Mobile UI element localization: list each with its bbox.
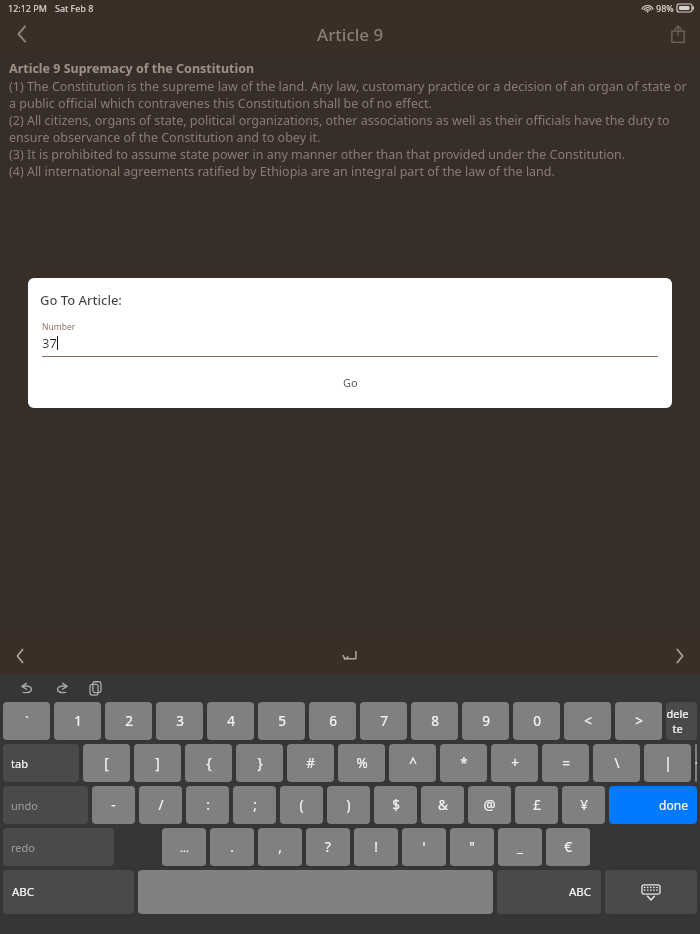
staticText: $: [392, 796, 400, 814]
staticText: (1) The Constitution is the supreme law …: [9, 78, 691, 180]
button[interactable]: 5: [258, 702, 305, 740]
button[interactable]: ,: [258, 828, 302, 866]
button[interactable]: \: [593, 744, 640, 782]
staticText: /: [158, 796, 164, 814]
button[interactable]: 8: [411, 702, 458, 740]
staticText: (: [299, 796, 304, 814]
button[interactable]: 1: [54, 702, 101, 740]
button[interactable]: Share: [656, 16, 700, 52]
button[interactable]: ?: [306, 828, 350, 866]
button[interactable]: Redo: [46, 675, 76, 701]
button[interactable]: {: [185, 744, 232, 782]
button[interactable]: &: [421, 786, 464, 824]
button[interactable]: ABC: [497, 870, 601, 914]
button[interactable]: ~: [695, 744, 697, 782]
button[interactable]: Paste: [80, 675, 110, 701]
button[interactable]: ;: [233, 786, 276, 824]
staticText: ABC: [569, 884, 592, 900]
button[interactable]: ABC: [3, 870, 134, 914]
button[interactable]: Back: [0, 16, 44, 52]
button[interactable]: +: [491, 744, 538, 782]
button[interactable]: 2: [105, 702, 152, 740]
button[interactable]: ]: [134, 744, 181, 782]
staticText: Number: [42, 321, 76, 333]
staticText: .: [230, 838, 234, 856]
staticText: [: [104, 754, 109, 772]
button[interactable]: >: [615, 702, 662, 740]
button[interactable]: .: [210, 828, 254, 866]
button[interactable]: tab: [3, 744, 79, 782]
button[interactable]: Previous: [0, 638, 40, 674]
staticText: Sat Feb 8: [55, 2, 94, 14]
button[interactable]: Hide keyboard: [330, 638, 370, 674]
staticText: ~: [695, 754, 697, 772]
staticText: redo: [11, 840, 35, 855]
staticText: ,: [278, 838, 282, 856]
staticText: undo: [11, 798, 39, 813]
button[interactable]: 3: [156, 702, 203, 740]
button[interactable]: redo: [3, 828, 114, 866]
button[interactable]: $: [374, 786, 417, 824]
button[interactable]: !: [354, 828, 398, 866]
button[interactable]: |: [644, 744, 691, 782]
staticText: ¥: [580, 796, 588, 814]
button[interactable]: delete: [666, 702, 697, 740]
button[interactable]: ): [327, 786, 370, 824]
button[interactable]: }: [236, 744, 283, 782]
staticText: >: [635, 712, 643, 730]
button[interactable]: Dismiss keyboard: [605, 870, 697, 914]
staticText: 8: [431, 712, 439, 730]
staticText: ]: [155, 754, 160, 772]
staticText: Article 9 Supremacy of the Constitution: [9, 60, 255, 77]
button[interactable]: €: [546, 828, 590, 866]
staticText: <: [584, 712, 592, 730]
button[interactable]: #: [287, 744, 334, 782]
button[interactable]: Go: [28, 357, 672, 408]
button[interactable]: ...: [162, 828, 206, 866]
button[interactable]: (: [280, 786, 323, 824]
staticText: @: [483, 796, 496, 814]
staticText: delete: [666, 706, 689, 736]
staticText: 0: [533, 712, 541, 730]
button[interactable]: `: [3, 702, 50, 740]
button[interactable]: -: [92, 786, 135, 824]
button[interactable]: 7: [360, 702, 407, 740]
staticText: 7: [380, 712, 388, 730]
button[interactable]: =: [542, 744, 589, 782]
staticText: £: [533, 796, 541, 814]
button[interactable]: undo: [3, 786, 88, 824]
button[interactable]: 9: [462, 702, 509, 740]
button[interactable]: ¥: [562, 786, 605, 824]
staticText: =: [562, 754, 570, 772]
button[interactable]: ^: [389, 744, 436, 782]
button[interactable]: [: [83, 744, 130, 782]
staticText: ABC: [12, 884, 35, 900]
button[interactable]: 0: [513, 702, 560, 740]
staticText: #: [306, 754, 315, 772]
staticText: Article 9: [317, 23, 384, 46]
button[interactable]: 4: [207, 702, 254, 740]
button[interactable]: done: [609, 786, 697, 824]
button[interactable]: Next: [660, 638, 700, 674]
staticText: ): [346, 796, 351, 814]
button[interactable]: _: [498, 828, 542, 866]
button[interactable]: Undo: [12, 675, 42, 701]
button[interactable]: ": [450, 828, 494, 866]
staticText: 9: [482, 712, 490, 730]
staticText: ': [422, 838, 426, 856]
staticText: 1: [74, 712, 82, 730]
staticText: Go: [343, 375, 358, 390]
button[interactable]: ': [402, 828, 446, 866]
button[interactable]: *: [440, 744, 487, 782]
button[interactable]: /: [139, 786, 182, 824]
button[interactable]: 6: [309, 702, 356, 740]
button[interactable]: @: [468, 786, 511, 824]
staticText: ?: [325, 838, 331, 856]
button[interactable]: %: [338, 744, 385, 782]
button[interactable]: :: [186, 786, 229, 824]
staticText: :: [206, 796, 210, 814]
button[interactable]: <: [564, 702, 611, 740]
staticText: ;: [253, 796, 257, 814]
button[interactable]: £: [515, 786, 558, 824]
